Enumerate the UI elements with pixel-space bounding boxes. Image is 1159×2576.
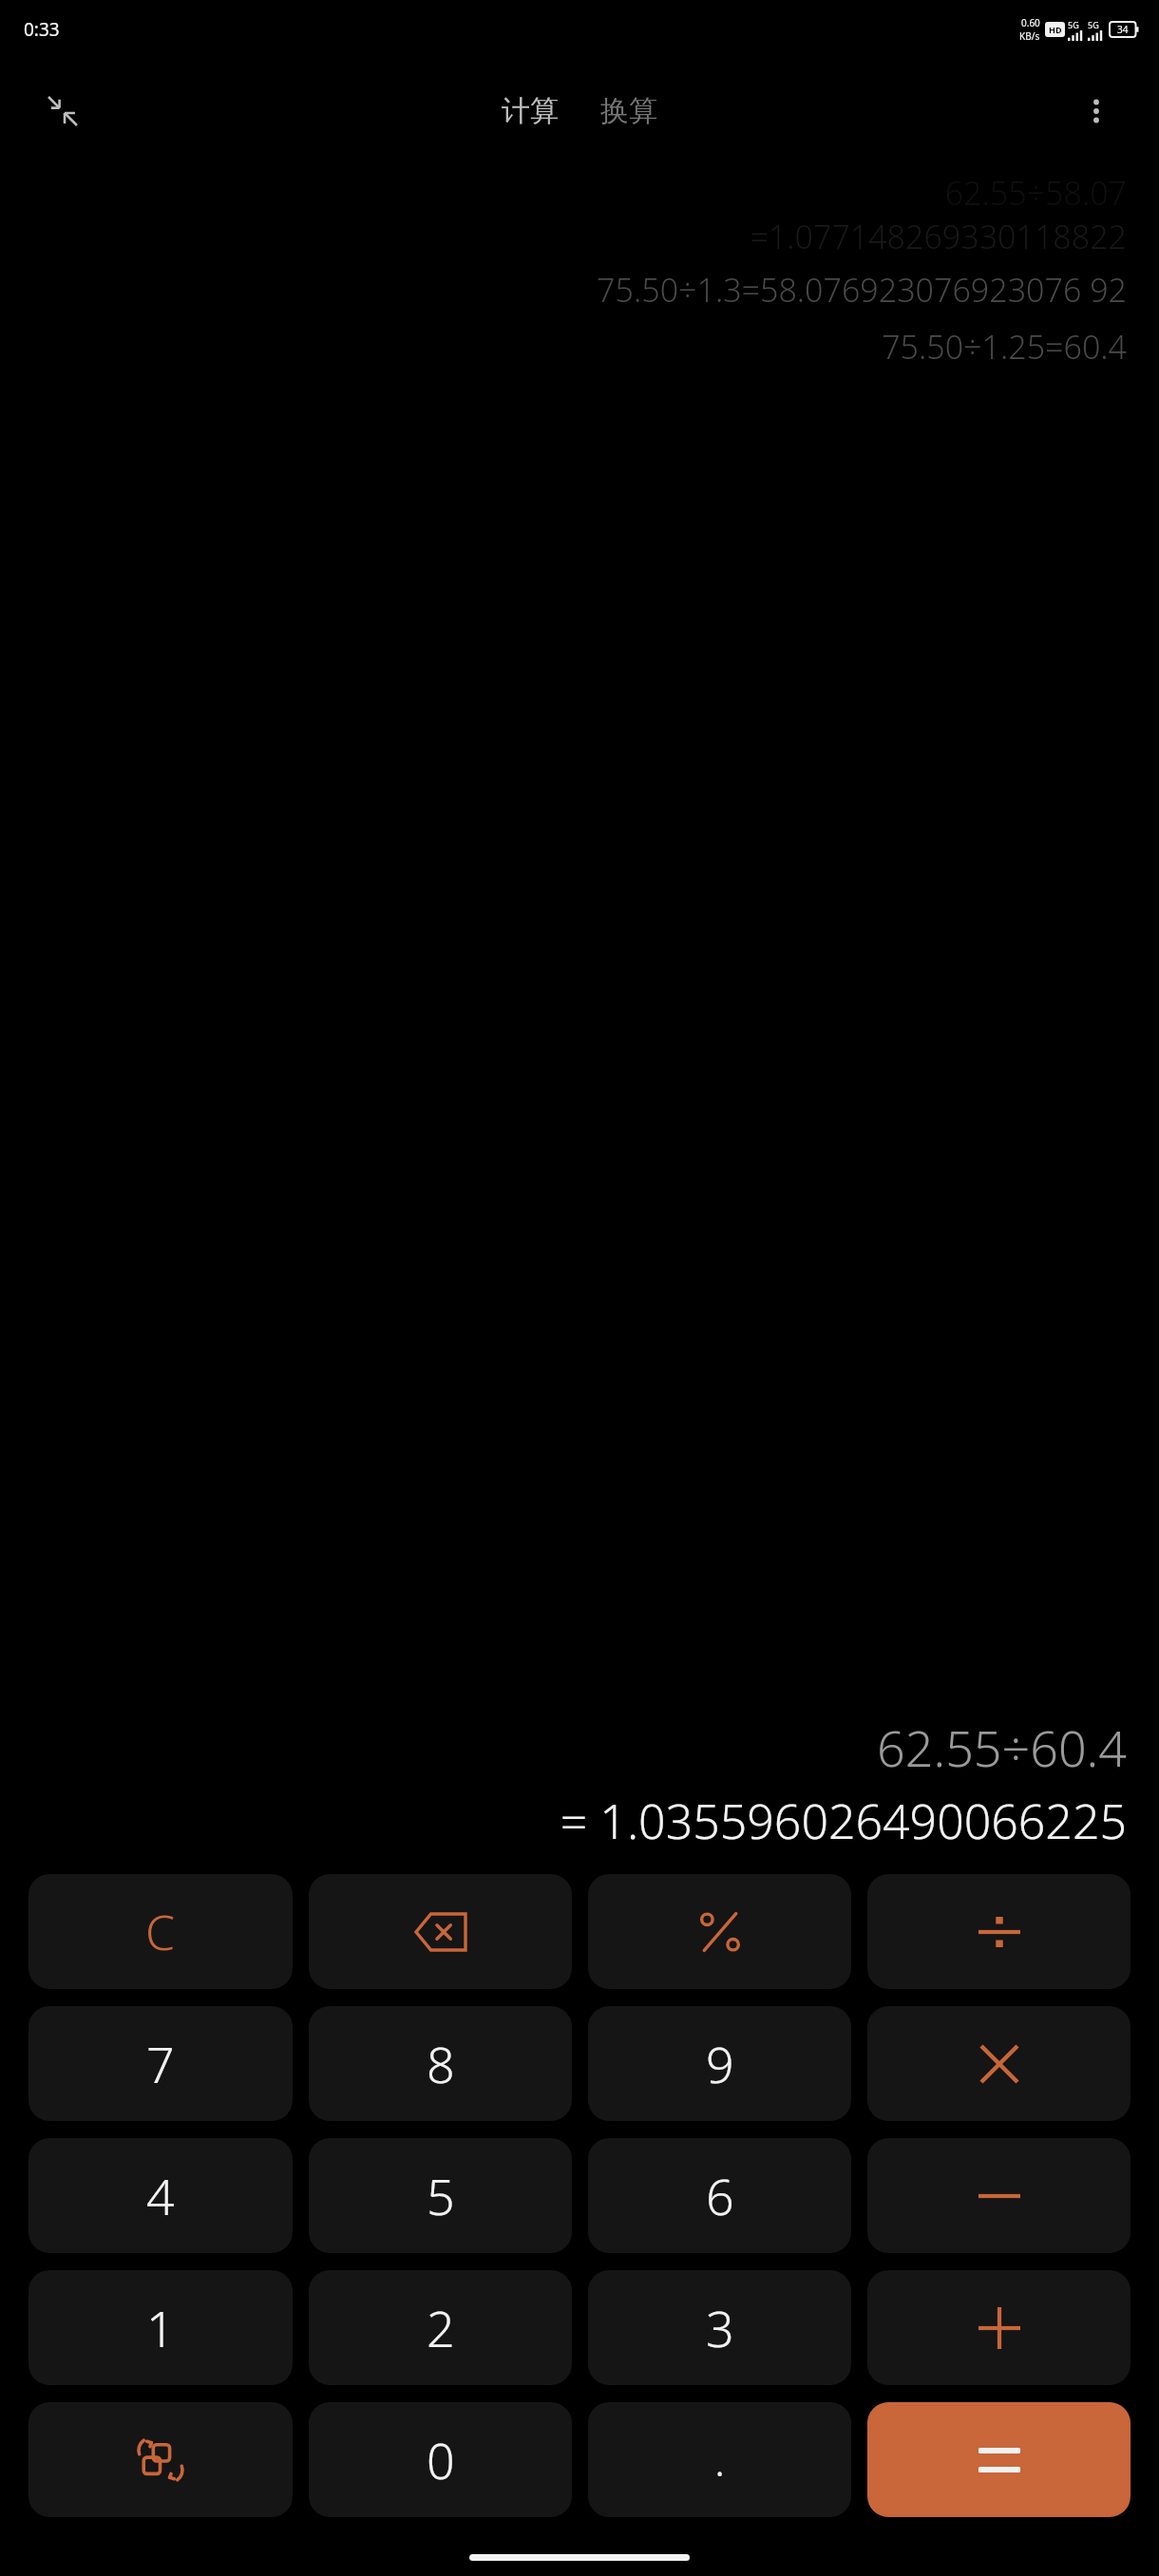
staticText: 5G [1068, 19, 1079, 30]
button[interactable]: Plus [867, 2270, 1130, 2385]
button[interactable]: 5 [309, 2138, 572, 2253]
button[interactable]: 换算 [591, 87, 667, 135]
staticText: 4 [146, 2162, 175, 2229]
staticText: 5 [427, 2162, 455, 2229]
button[interactable]: Minus [867, 2138, 1130, 2253]
button[interactable]: 2 [309, 2270, 572, 2385]
button[interactable]: Convert [28, 2402, 293, 2517]
button[interactable]: Divide [867, 1874, 1130, 1989]
button[interactable]: Percent [588, 1874, 851, 1989]
staticText: 0:33 [24, 17, 60, 42]
staticText: 3 [706, 2294, 734, 2361]
staticText: 换算 [600, 93, 657, 129]
button[interactable]: 7 [28, 2006, 293, 2121]
button[interactable]: 1 [28, 2270, 293, 2385]
button[interactable]: 计算 [492, 87, 568, 135]
staticText: C [145, 1900, 176, 1964]
staticText: . [714, 2430, 726, 2490]
button[interactable]: Clear [28, 1874, 293, 1989]
button[interactable]: 4 [28, 2138, 293, 2253]
button[interactable]: 9 [588, 2006, 851, 2121]
button[interactable]: 6 [588, 2138, 851, 2253]
staticText: 计算 [502, 93, 559, 129]
button[interactable]: 8 [309, 2006, 572, 2121]
button[interactable]: =1.077148269330118822 [32, 215, 1127, 258]
staticText: 9 [706, 2030, 734, 2097]
button[interactable]: Equals [867, 2402, 1130, 2517]
button[interactable]: 0 [309, 2402, 572, 2517]
button[interactable]: Backspace [309, 1874, 572, 1989]
staticText: = 1.035596026490066225 [32, 1789, 1127, 1853]
button[interactable]: Multiply [867, 2006, 1130, 2121]
button[interactable]: 3 [588, 2270, 851, 2385]
button[interactable]: . [588, 2402, 851, 2517]
staticText: 0 [427, 2426, 455, 2493]
button[interactable]: 75.50÷1.25=60.4 [32, 325, 1127, 369]
staticText: 5G [1088, 19, 1099, 30]
button[interactable]: 75.50÷1.3=58.076923076923076 92 [32, 268, 1127, 312]
staticText: 1 [146, 2294, 175, 2361]
staticText: 62.55÷60.4 [32, 1714, 1127, 1781]
staticText: 2 [427, 2294, 455, 2361]
button[interactable]: More options [1062, 77, 1130, 145]
staticText: 8 [427, 2030, 455, 2097]
staticText: HD [1049, 24, 1062, 35]
staticText: 6 [706, 2162, 734, 2229]
staticText: 34 [1117, 23, 1129, 36]
button[interactable]: Collapse [28, 77, 97, 145]
staticText: KB/s [1019, 29, 1040, 43]
staticText: 0.60 [1021, 16, 1040, 29]
staticText: 7 [146, 2030, 175, 2097]
